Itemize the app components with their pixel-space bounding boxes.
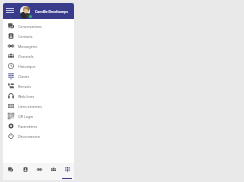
button[interactable]: Clavier <box>3 71 74 81</box>
staticText: Contacts <box>18 34 33 39</box>
button[interactable]: Channels <box>46 163 60 180</box>
button[interactable]: Messagerie <box>3 41 74 51</box>
staticText: Conversations <box>18 24 42 29</box>
staticText: Liens externes <box>18 104 43 109</box>
button[interactable]: Contacts <box>18 163 32 180</box>
staticText: Renvois <box>18 84 31 89</box>
staticText: Messagerie <box>18 44 38 49</box>
staticText: Channels <box>18 54 34 59</box>
staticText: Paramètres <box>18 124 38 129</box>
staticText: Clavier <box>18 74 30 79</box>
button[interactable]: Renvois <box>3 81 74 91</box>
button[interactable]: Liens externes <box>3 101 74 111</box>
button[interactable]: Web-lines <box>3 91 74 101</box>
staticText: Web-lines <box>18 94 35 99</box>
button[interactable]: Menu <box>5 5 15 15</box>
staticText: QR Login <box>18 114 34 119</box>
button[interactable]: Paramètres <box>3 121 74 131</box>
button[interactable]: Déconnexion <box>3 131 74 141</box>
button[interactable]: QR Login <box>3 111 74 121</box>
staticText: Déconnexion <box>18 134 40 139</box>
button[interactable]: Conversations <box>3 21 74 31</box>
staticText: Historique <box>18 64 36 69</box>
button[interactable]: Conversations <box>3 163 18 180</box>
button[interactable]: Historique <box>3 61 74 71</box>
button[interactable]: Contacts <box>3 31 74 41</box>
button[interactable]: Messagerie <box>32 163 46 180</box>
button[interactable]: Profil <box>19 5 32 18</box>
staticText: Camille Deschamps <box>35 9 69 14</box>
button[interactable]: Clavier <box>60 163 74 180</box>
button[interactable]: Channels <box>3 51 74 61</box>
